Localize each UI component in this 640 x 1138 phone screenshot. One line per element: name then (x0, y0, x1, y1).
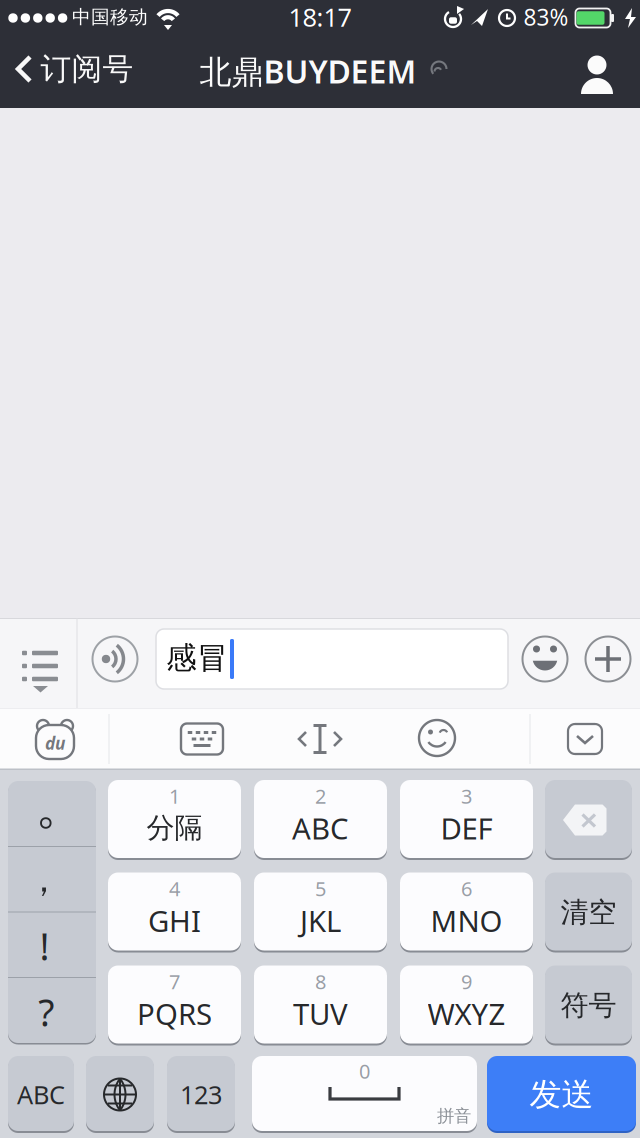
button[interactable]: 删除 (545, 780, 632, 860)
button[interactable]: MNO (400, 872, 533, 952)
staticText: 83% (523, 2, 568, 32)
button[interactable]: JKL (254, 872, 387, 952)
staticText: DEF (440, 808, 492, 847)
staticText: 2 (315, 783, 326, 809)
button[interactable]: 表情符号 (418, 719, 456, 757)
button[interactable]: 空格 (252, 1056, 477, 1133)
button[interactable]: 移动光标 (295, 724, 345, 754)
staticText: 5 (315, 875, 326, 902)
button[interactable]: 更多功能 (585, 636, 631, 682)
staticText: GHI (148, 901, 201, 940)
button[interactable]: ABC (8, 1056, 74, 1133)
button[interactable]: 表情 (522, 636, 568, 682)
staticText: 北鼎BUYDEEM (199, 50, 416, 92)
button[interactable]: 123 (167, 1056, 235, 1133)
button[interactable]: ABC (254, 780, 387, 860)
button[interactable]: 符号 (545, 965, 632, 1045)
staticText: 拼音 (437, 1105, 471, 1127)
button[interactable]: 收起键盘 (568, 724, 602, 754)
button[interactable]: 分隔 (108, 780, 241, 860)
staticText: 中国移动 (72, 5, 148, 28)
button[interactable]: DEF (400, 780, 533, 860)
staticText: 发送 (529, 1075, 593, 1114)
staticText: ! (40, 921, 50, 971)
staticText: 4 (169, 875, 180, 902)
staticText: 18:17 (288, 0, 351, 34)
button[interactable]: 叹号 (1, 916, 89, 976)
staticText: TUV (293, 994, 348, 1033)
staticText: 分隔 (146, 811, 202, 845)
staticText: WXYZ (427, 994, 505, 1033)
button[interactable]: 联系人资料 (575, 46, 619, 96)
staticText: ? (38, 987, 54, 1037)
button[interactable]: 切换到自定义菜单 (0, 618, 77, 708)
button[interactable]: 键盘 (181, 723, 223, 754)
button[interactable]: 百度输入法 (31, 717, 79, 761)
button[interactable]: PQRS (108, 965, 241, 1045)
button[interactable]: WXYZ (400, 965, 533, 1045)
staticText: ， (26, 859, 61, 901)
button[interactable]: 切换输入法 (86, 1056, 154, 1133)
staticText: 6 (461, 875, 472, 902)
button[interactable]: 问号 (2, 982, 90, 1042)
button[interactable]: GHI (108, 872, 241, 952)
staticText: 1 (169, 783, 180, 809)
button[interactable]: 返回订阅号 (0, 40, 140, 108)
staticText: 3 (461, 783, 472, 809)
staticText: JKL (300, 901, 341, 940)
button[interactable]: 清空 (545, 872, 632, 952)
staticText: 7 (169, 968, 180, 995)
button[interactable]: 感冒 (156, 629, 508, 689)
staticText: 8 (315, 968, 326, 995)
staticText: ABC (292, 808, 349, 847)
staticText: du (45, 731, 65, 755)
staticText: 123 (180, 1078, 222, 1111)
staticText: ABC (17, 1078, 65, 1111)
staticText: 符号 (560, 988, 616, 1023)
staticText: 清空 (560, 895, 616, 930)
button[interactable]: TUV (254, 965, 387, 1045)
staticText: 9 (461, 968, 472, 995)
button[interactable]: 发送 (487, 1056, 636, 1133)
button[interactable]: 逗号 (0, 850, 88, 910)
staticText: 感冒 (166, 639, 228, 677)
staticText: PQRS (137, 994, 212, 1033)
staticText: 0 (359, 1058, 370, 1084)
staticText: 订阅号 (40, 50, 133, 88)
staticText: MNO (430, 901, 502, 940)
button[interactable]: 语音输入 (92, 636, 138, 682)
button[interactable]: 句号 (16, 793, 76, 853)
